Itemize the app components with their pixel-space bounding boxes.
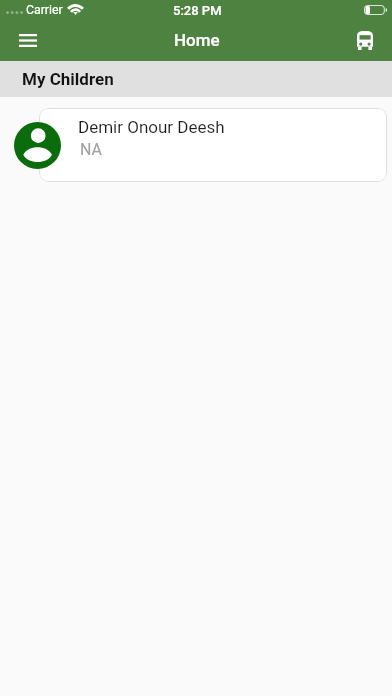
staticText: Demir Onour Deesh <box>78 117 225 137</box>
staticText: My Children <box>22 69 114 89</box>
button[interactable]: Bus tracking <box>341 21 388 60</box>
staticText: Home <box>174 30 220 50</box>
button[interactable]: Demir Onour Deesh <box>0 97 392 193</box>
staticText: Carrier <box>26 3 63 17</box>
staticText: NA <box>80 140 102 159</box>
staticText: 5:28 PM <box>173 3 222 18</box>
button[interactable]: Open navigation menu <box>4 21 51 60</box>
